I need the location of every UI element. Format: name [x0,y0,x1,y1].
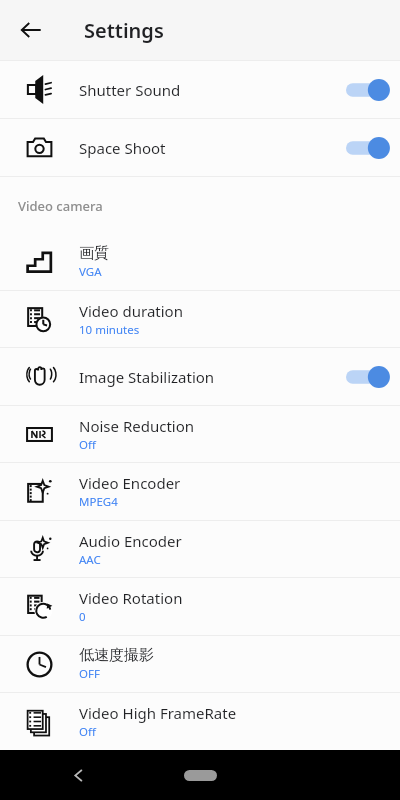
staticText: Audio Encoder [79,531,182,551]
button[interactable]: Space Shoot [342,124,394,172]
staticText: Video Encoder [79,473,181,493]
staticText: Off [79,724,96,740]
staticText: Video High FrameRate [79,703,237,723]
button[interactable]: Shutter Sound [342,66,394,114]
staticText: 10 minutes [79,322,140,338]
staticText: Shutter Sound [79,80,181,100]
staticText: MPEG4 [79,494,118,510]
staticText: VGA [79,264,102,280]
staticText: AAC [79,552,101,568]
button[interactable]: 低速度撮影 [0,636,400,692]
staticText: OFF [79,666,100,682]
staticText: Video duration [79,301,183,321]
staticText: 0 [79,609,86,625]
button[interactable]: Video Rotation [0,578,400,635]
staticText: 画質 [79,244,109,263]
button[interactable]: Space Shoot [0,119,400,176]
button[interactable]: Image Stabilization [342,353,394,401]
button[interactable]: Back [60,757,96,793]
button[interactable]: 画質 [0,234,400,290]
button[interactable]: Audio Encoder [0,521,400,577]
button[interactable]: Video Encoder [0,463,400,520]
button[interactable]: Video High FrameRate [0,693,400,750]
staticText: Image Stabilization [79,367,215,387]
button[interactable]: Home [184,770,217,781]
staticText: Settings [84,17,164,44]
button[interactable]: Back [10,9,52,51]
staticText: Space Shoot [79,138,166,158]
button[interactable]: Shutter Sound [0,61,400,118]
staticText: Noise Reduction [79,416,195,436]
staticText: Video camera [18,197,103,215]
button[interactable]: Noise Reduction [0,406,400,462]
staticText: 低速度撮影 [79,646,154,665]
staticText: Off [79,437,96,453]
button[interactable]: Image Stabilization [0,348,400,405]
button[interactable]: Video duration [0,291,400,347]
staticText: Video Rotation [79,588,183,608]
